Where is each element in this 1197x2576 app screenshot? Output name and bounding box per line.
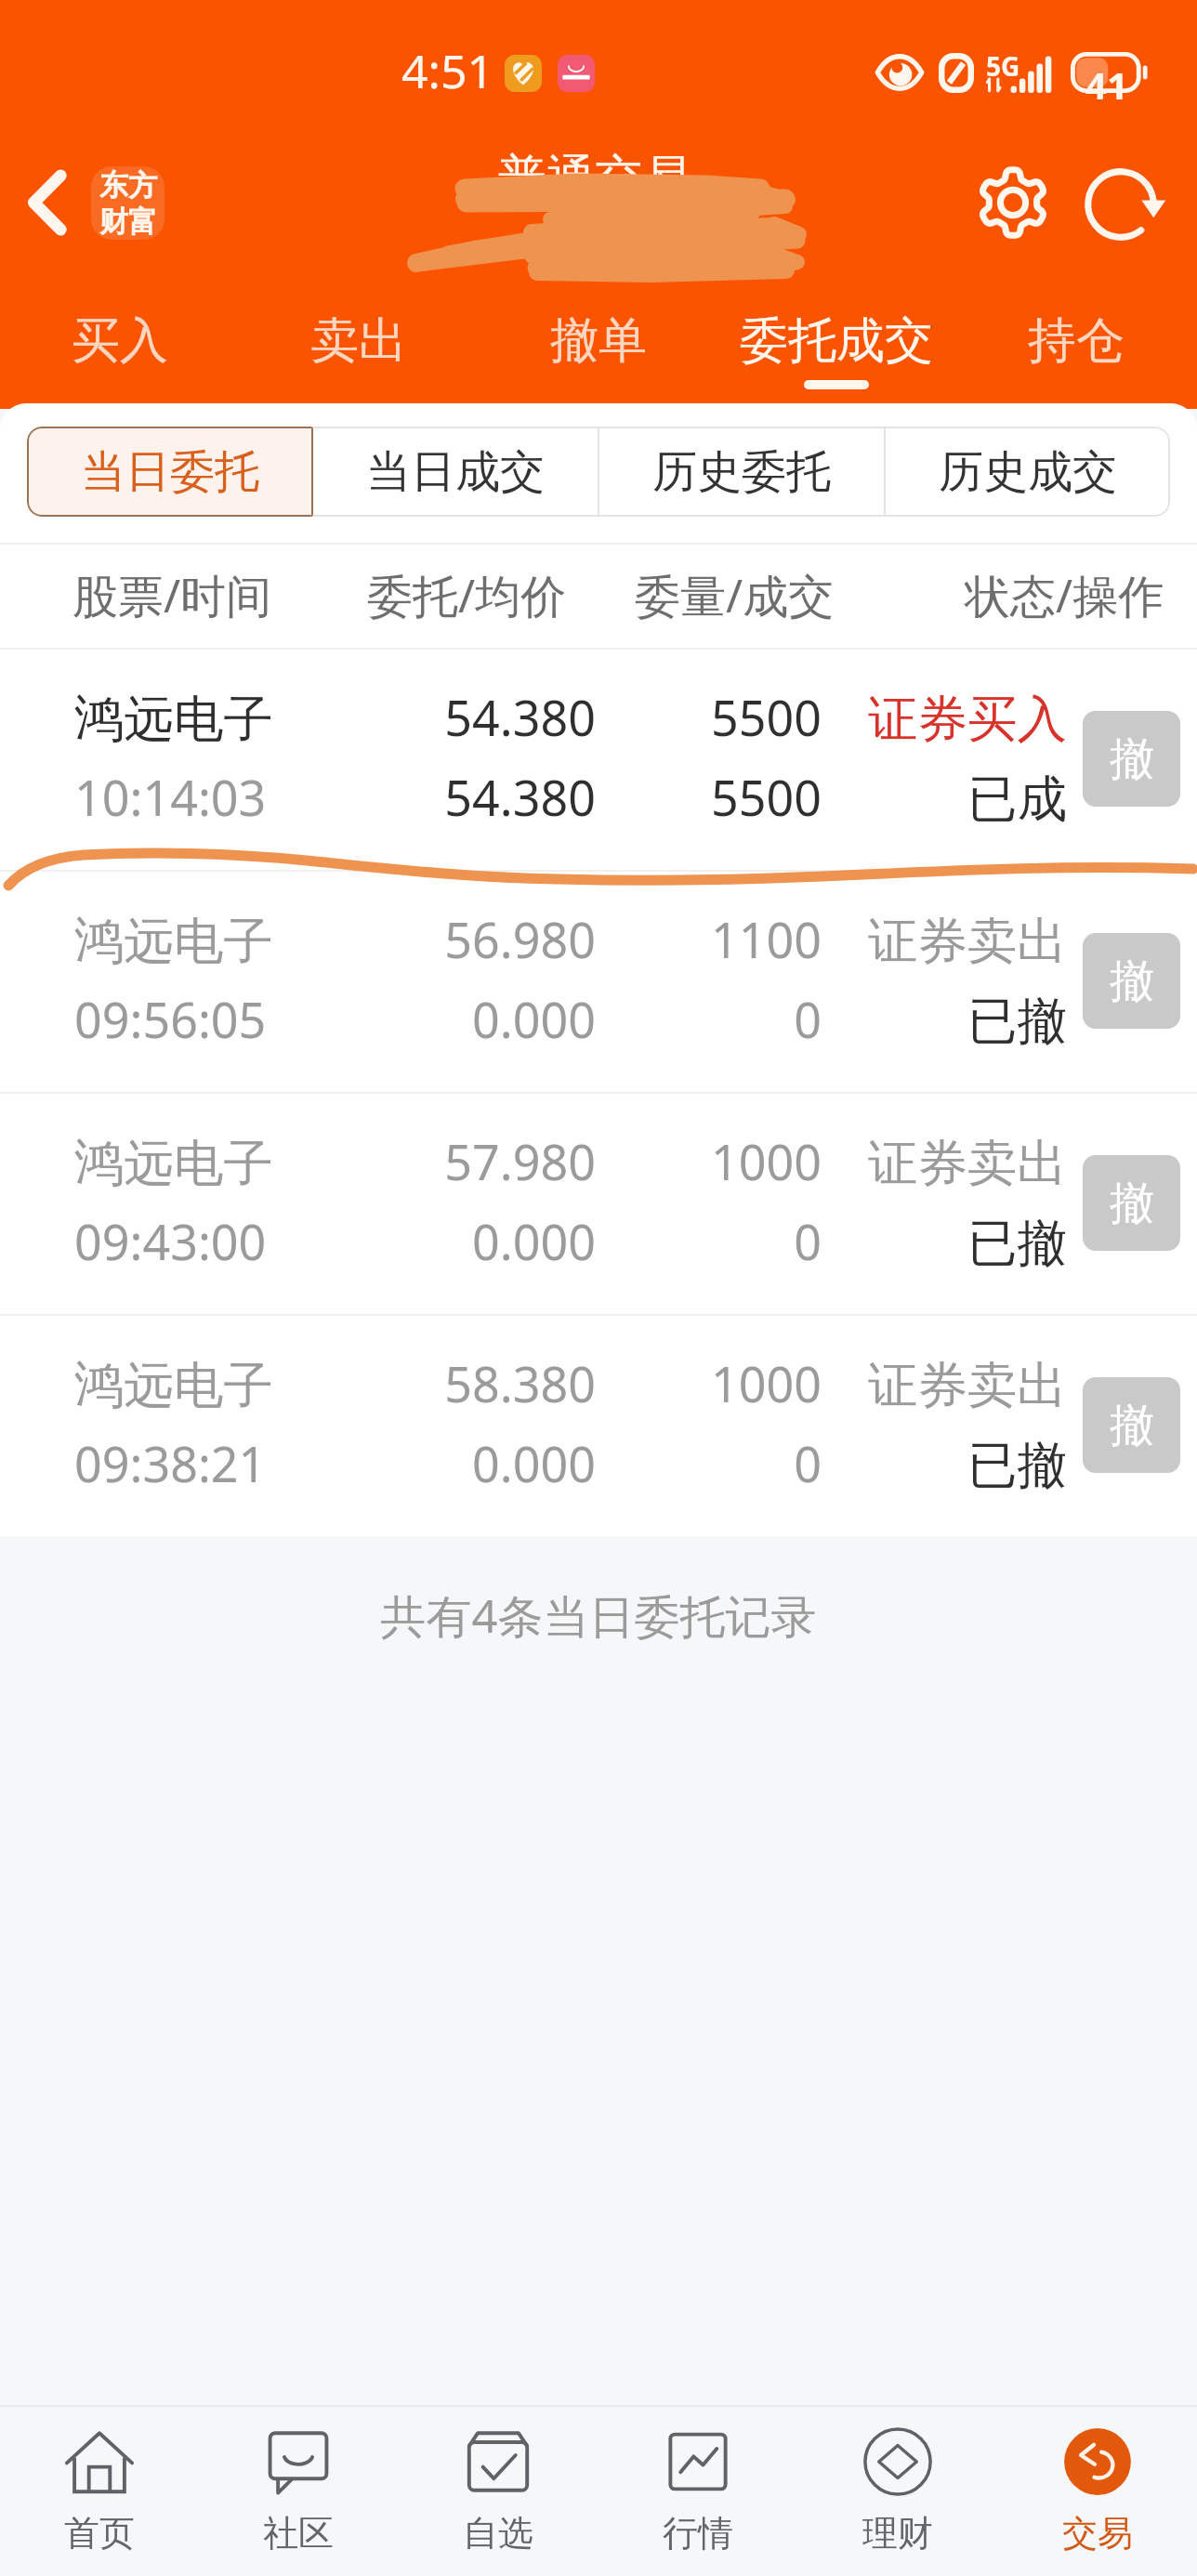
staticText: 买入 (72, 310, 168, 372)
button[interactable]: Refresh (1077, 161, 1164, 247)
button[interactable]: Settings (969, 159, 1056, 245)
staticText: 鸿远电子 (74, 1132, 273, 1194)
staticText: 证券卖出 (0, 1354, 1067, 1416)
button[interactable]: 东方 (91, 166, 164, 240)
button[interactable]: 委托成交 (721, 310, 952, 400)
staticText: 已成 (0, 768, 1067, 830)
staticText: 57.980 (0, 1128, 596, 1194)
staticText: 股票/时间 (72, 564, 272, 626)
button[interactable]: 鸿远电子 (0, 648, 1197, 870)
staticText: 1000 (0, 1350, 822, 1416)
staticText: 4:51 (401, 39, 494, 102)
staticText: 普通交易 (498, 148, 691, 209)
staticText: 0 (0, 1208, 822, 1274)
button[interactable]: 撤 (1083, 1377, 1180, 1473)
staticText: 09:43:00 (74, 1208, 267, 1274)
staticText: 0.000 (0, 986, 596, 1052)
staticText: 证券卖出 (0, 1132, 1067, 1194)
button[interactable]: 鸿远电子 (0, 1092, 1197, 1314)
button[interactable]: 撤 (1083, 1155, 1180, 1251)
staticText: 撤 (1110, 953, 1154, 1009)
staticText: 社区 (263, 2511, 334, 2556)
staticText: 卖出 (310, 310, 407, 372)
button[interactable]: 首页 (0, 2407, 199, 2576)
staticText: 5G (986, 48, 1020, 84)
staticText: 已撤 (0, 990, 1067, 1052)
staticText: 5500 (0, 764, 822, 830)
staticText: 56.980 (0, 906, 596, 972)
staticText: 历史委托 (652, 444, 831, 500)
button[interactable]: 当日委托 (27, 427, 311, 517)
staticText: 41 (1085, 59, 1128, 100)
button[interactable]: 当日委托 (27, 427, 313, 517)
staticText: 财富 (99, 204, 157, 240)
staticText: 10:14:03 (74, 764, 267, 830)
button[interactable]: 撤 (1083, 933, 1180, 1029)
button[interactable]: 交易 (997, 2407, 1197, 2576)
staticText: 委托/均价 (367, 564, 567, 626)
button[interactable]: 卖出 (292, 310, 426, 400)
staticText: 委量/成交 (635, 564, 835, 626)
staticText: 交易 (1062, 2511, 1133, 2556)
staticText: 委托成交 (740, 310, 933, 372)
button[interactable]: 历史委托 (599, 427, 884, 517)
staticText: 54.380 (0, 764, 596, 830)
button[interactable]: 撤单 (532, 310, 665, 400)
button[interactable]: 鸿远电子 (0, 870, 1197, 1092)
button[interactable]: 买入 (53, 310, 187, 400)
button[interactable]: 鸿远电子 (0, 1314, 1197, 1536)
staticText: 当日委托 (81, 444, 259, 500)
button[interactable]: 自选 (398, 2407, 598, 2576)
staticText: 0 (0, 1430, 822, 1496)
staticText: 58.380 (0, 1350, 596, 1416)
staticText: 5500 (0, 684, 822, 750)
button[interactable]: 理财 (797, 2407, 997, 2576)
staticText: 54.380 (0, 684, 596, 750)
staticText: 撤 (1110, 731, 1154, 787)
button[interactable]: 当日成交 (313, 427, 598, 517)
staticText: 证券卖出 (0, 910, 1067, 972)
staticText: 鸿远电子 (74, 1354, 273, 1416)
staticText: 撤单 (550, 310, 647, 372)
staticText: 鸿远电子 (74, 910, 273, 972)
staticText: 09:56:05 (74, 986, 267, 1052)
staticText: 0.000 (0, 1208, 596, 1274)
staticText: 理财 (862, 2511, 933, 2556)
button[interactable]: 社区 (199, 2407, 398, 2576)
staticText: 撤 (1110, 1398, 1154, 1453)
staticText: 0.000 (0, 1430, 596, 1496)
staticText: 共有4条当日委托记录 (0, 1584, 1197, 1647)
staticText: 自选 (463, 2511, 533, 2556)
staticText: 行情 (663, 2511, 733, 2556)
staticText: 已撤 (0, 1434, 1067, 1496)
button[interactable]: Back (7, 164, 85, 242)
button[interactable]: 行情 (598, 2407, 797, 2576)
staticText: 当日委托 (80, 444, 258, 500)
button[interactable]: 历史成交 (886, 427, 1170, 517)
staticText: 持仓 (1028, 310, 1125, 372)
staticText: 鸿远电子 (74, 688, 273, 750)
staticText: 已撤 (0, 1212, 1067, 1274)
button[interactable]: 持仓 (1009, 310, 1143, 400)
staticText: 1000 (0, 1128, 822, 1194)
button[interactable]: 撤 (1083, 711, 1180, 807)
staticText: 东方 (99, 167, 157, 204)
staticText: 1100 (0, 906, 822, 972)
staticText: 当日成交 (366, 444, 545, 500)
staticText: 09:38:21 (74, 1430, 267, 1496)
staticText: 状态/操作 (965, 564, 1164, 626)
staticText: 历史成交 (939, 444, 1117, 500)
staticText: 0 (0, 986, 822, 1052)
staticText: 撤 (1110, 1176, 1154, 1231)
staticText: 证券买入 (0, 688, 1067, 750)
staticText: 首页 (64, 2511, 135, 2556)
